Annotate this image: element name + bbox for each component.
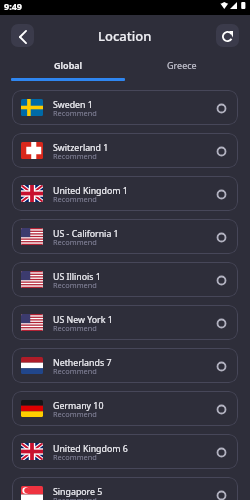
button[interactable]: Singapore 5	[12, 477, 238, 500]
staticText: Switzerland 1	[53, 142, 109, 154]
button[interactable]: Greece	[125, 55, 239, 81]
staticText: Greece	[167, 59, 197, 71]
staticText: Germany 10	[53, 400, 104, 412]
button[interactable]: US - California 1	[12, 219, 238, 254]
button[interactable]: Global	[11, 55, 125, 81]
staticText: Sweden 1	[53, 99, 93, 111]
staticText: Netherlands 7	[53, 357, 112, 369]
button[interactable]: United Kingdom 1	[12, 176, 238, 211]
button[interactable]: Refresh	[216, 24, 239, 47]
staticText: US New York 1	[53, 314, 113, 326]
staticText: Recommend	[53, 323, 97, 333]
staticText: Recommend	[53, 237, 97, 247]
button[interactable]: Switzerland 1	[12, 133, 238, 168]
staticText: United Kingdom 6	[53, 443, 128, 455]
staticText: Global	[54, 59, 83, 71]
button[interactable]: US Illinois 1	[12, 262, 238, 297]
staticText: Recommend	[53, 151, 97, 161]
staticText: Recommend	[53, 194, 97, 204]
button[interactable]: Sweden 1	[12, 90, 238, 125]
button[interactable]: US New York 1	[12, 305, 238, 340]
staticText: Recommend	[53, 495, 97, 500]
button[interactable]: Back	[11, 24, 34, 47]
button[interactable]: Netherlands 7	[12, 348, 238, 383]
staticText: Location	[98, 27, 152, 45]
button[interactable]: Germany 10	[12, 391, 238, 426]
staticText: US Illinois 1	[53, 271, 101, 283]
staticText: US - California 1	[53, 228, 119, 240]
staticText: Recommend	[53, 108, 97, 118]
staticText: Recommend	[53, 452, 97, 462]
staticText: Recommend	[53, 409, 97, 419]
staticText: Singapore 5	[53, 486, 103, 498]
staticText: Recommend	[53, 280, 97, 290]
staticText: Recommend	[53, 366, 97, 376]
staticText: United Kingdom 1	[53, 185, 128, 197]
staticText: 9:49	[4, 0, 22, 12]
button[interactable]: United Kingdom 6	[12, 434, 238, 469]
